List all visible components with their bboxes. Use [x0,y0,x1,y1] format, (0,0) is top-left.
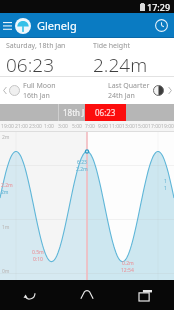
button[interactable]: Time settings [149,13,174,38]
button[interactable]: Full Moon [9,77,87,104]
staticText: 5:00 [72,123,82,130]
staticText: 1 [164,185,167,192]
staticText: 17:29 [147,1,171,13]
staticText: 3:00 [58,123,68,130]
staticText: Full Moon [23,81,56,91]
staticText: 0.2m [122,260,134,267]
staticText: 7:00 [85,123,95,130]
staticText: 2.2m [1,182,13,189]
staticText: 9:00 [98,123,108,130]
staticText: Last Quarter [108,81,150,91]
staticText: 15:00 [135,123,148,130]
staticText: Tide height [93,41,131,51]
staticText: 23:00 [29,123,42,130]
staticText: 0m [2,268,10,275]
button[interactable]: Next [165,77,174,104]
button[interactable]: Back [0,280,58,310]
staticText: 1 [164,178,167,185]
staticText: 19:00 [161,123,174,130]
button[interactable]: Tide height [87,38,174,76]
staticText: 06:23 [95,107,116,118]
staticText: 13:00 [122,123,135,130]
button[interactable] [0,132,174,280]
staticText: 16th Jan [23,91,50,101]
button[interactable]: Recent apps [116,280,174,310]
staticText: Glenelg [37,18,77,33]
staticText: 06:23 [6,52,55,76]
button[interactable]: Last Quarter [87,77,165,104]
staticText: 2.24m [93,52,148,76]
button[interactable]: 18th J [59,104,126,121]
staticText: 21:00 [15,123,28,130]
staticText: 1m [2,224,10,231]
staticText: 2m [1,189,9,196]
staticText: 11:00 [109,123,122,130]
button[interactable]: Open navigation drawer [1,13,14,38]
staticText: 19:00 [1,123,14,130]
staticText: 0.5m [32,249,44,256]
staticText: 0:10 [33,256,43,263]
button[interactable]: Saturday, 18th Jan [0,38,87,76]
staticText: 2m [2,134,10,141]
button[interactable]: App logo [14,17,32,35]
staticText: 17:00 [148,123,161,130]
staticText: 12:54 [121,267,134,274]
button[interactable]: Home [58,280,116,310]
staticText: 24th Jan [108,91,135,101]
staticText: 2.2m [76,166,88,173]
staticText: 6:23 [77,159,87,166]
staticText: Saturday, 18th Jan [6,41,66,51]
staticText: 18th J [63,107,85,118]
staticText: 1:00 [44,123,54,130]
button[interactable]: Previous [0,77,9,104]
